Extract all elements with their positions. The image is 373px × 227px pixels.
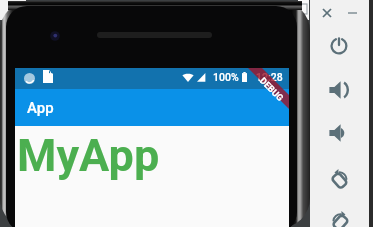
button[interactable]: Minimize bbox=[344, 5, 360, 21]
button[interactable]: Close bbox=[319, 5, 335, 21]
button[interactable]: Rotate left bbox=[327, 166, 351, 190]
staticText: DEBUG bbox=[257, 76, 285, 104]
staticText: App bbox=[27, 99, 54, 117]
button[interactable]: Power bbox=[327, 34, 351, 58]
button[interactable]: Volume up bbox=[327, 78, 351, 102]
button[interactable]: Volume down bbox=[327, 121, 351, 145]
button[interactable]: Rotate right bbox=[328, 208, 352, 227]
staticText: 12:28 bbox=[256, 71, 283, 83]
staticText: MyApp bbox=[17, 129, 160, 182]
staticText: 100% bbox=[213, 71, 239, 83]
